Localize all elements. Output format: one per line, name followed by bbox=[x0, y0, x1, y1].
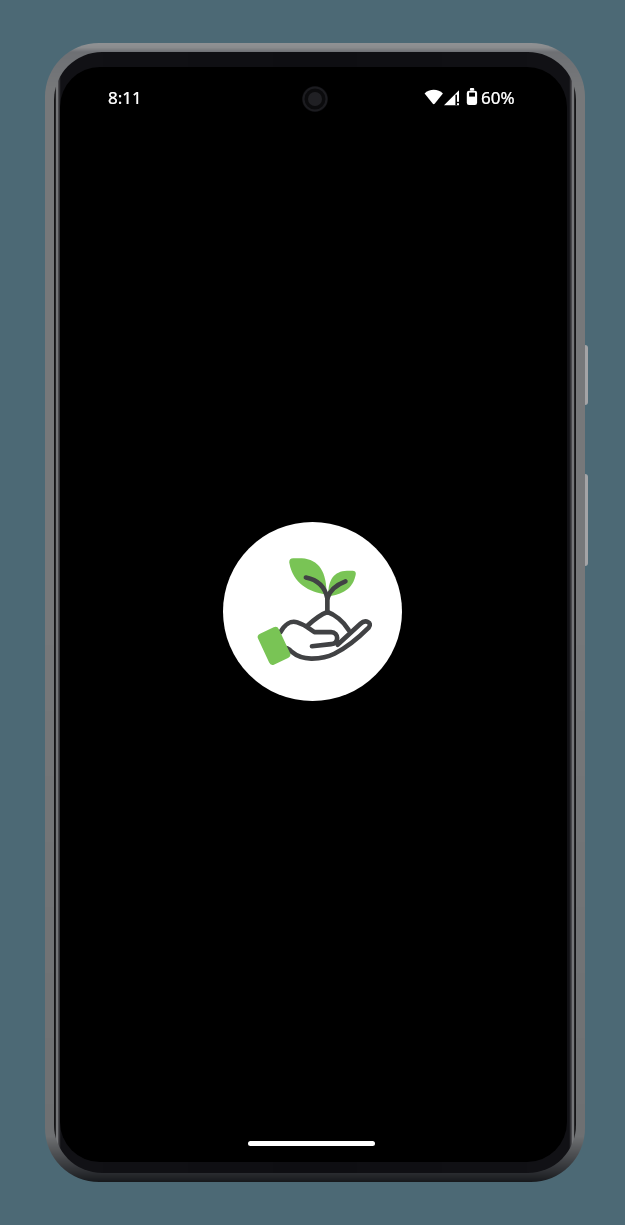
staticText: 8:11 bbox=[108, 86, 142, 109]
button[interactable]: App logo bbox=[223, 522, 402, 701]
staticText: 60% bbox=[481, 86, 515, 109]
